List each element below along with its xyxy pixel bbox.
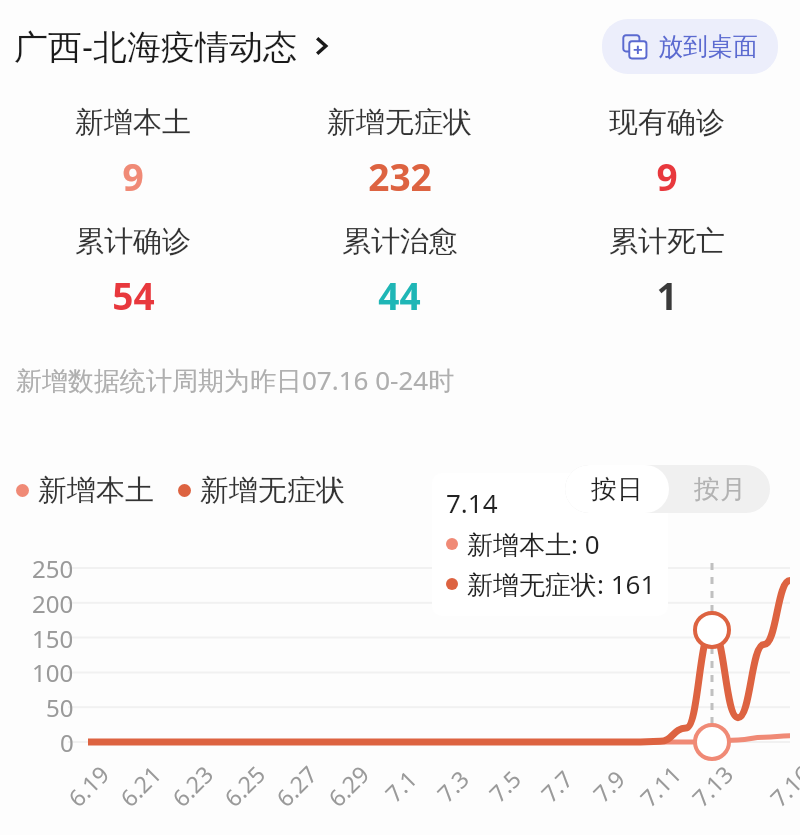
staticText: 7.13 [685, 758, 739, 813]
staticText: 累计死亡 [609, 223, 725, 260]
button[interactable]: 按月 [669, 465, 770, 513]
staticText: 7.7 [534, 763, 579, 808]
staticText: 7.11 [633, 758, 687, 813]
staticText: 6.21 [113, 758, 167, 813]
staticText: 按日 [591, 473, 643, 506]
staticText: 150 [32, 622, 74, 655]
button[interactable]: 累计治愈 [266, 223, 533, 320]
staticText: 232 [368, 151, 432, 201]
staticText: 7.1 [378, 763, 423, 808]
staticText: 新增无症状 [200, 472, 345, 509]
staticText: 9 [122, 151, 144, 201]
staticText: 9 [656, 151, 678, 201]
staticText: 200 [32, 587, 74, 620]
staticText: 7.9 [586, 763, 631, 808]
staticText: 新增本土 [38, 472, 154, 509]
button[interactable]: 现有确诊 [533, 104, 800, 201]
staticText: 6.29 [321, 758, 375, 813]
staticText: 新增本土: 0 [467, 526, 600, 562]
staticText: 累计治愈 [342, 223, 458, 260]
staticText: 1 [656, 270, 678, 320]
staticText: 新增无症状: 161 [467, 566, 656, 602]
button[interactable]: 广西-北海疫情动态 [14, 23, 333, 69]
staticText: 54 [112, 270, 155, 320]
staticText: 累计确诊 [75, 223, 191, 260]
staticText: 7.5 [482, 763, 527, 808]
staticText: 新增数据统计周期为昨日07.16 0-24时 [16, 362, 455, 398]
button[interactable]: 新增无症状 [266, 104, 533, 201]
staticText: 6.23 [165, 758, 219, 813]
staticText: 新增本土 [75, 104, 191, 141]
button[interactable]: 累计死亡 [533, 223, 800, 320]
staticText: 按月 [694, 473, 746, 506]
staticText: 7.3 [430, 763, 475, 808]
staticText: 6.25 [217, 758, 271, 813]
staticText: 现有确诊 [609, 104, 725, 141]
staticText: 广西-北海疫情动态 [14, 23, 297, 69]
staticText: 0 [60, 726, 74, 759]
button[interactable]: 新增本土 [16, 472, 154, 509]
button[interactable]: 新增无症状 [178, 472, 345, 509]
staticText: 6.19 [61, 758, 115, 813]
staticText: 新增无症状 [327, 104, 472, 141]
button[interactable]: 新增本土 [0, 104, 266, 201]
staticText: 44 [378, 270, 421, 320]
staticText: 放到桌面 [658, 31, 758, 62]
button[interactable]: 按日 [565, 465, 669, 513]
button[interactable]: Add to home screen [602, 19, 778, 74]
other: Add to home screen [622, 34, 648, 60]
staticText: 100 [32, 656, 74, 689]
button[interactable]: 累计确诊 [0, 223, 266, 320]
staticText: 6.27 [269, 758, 323, 813]
staticText: 50 [46, 691, 74, 724]
staticText: 7.14 [446, 485, 498, 520]
staticText: 7.16 [763, 758, 800, 813]
staticText: 250 [32, 552, 74, 585]
